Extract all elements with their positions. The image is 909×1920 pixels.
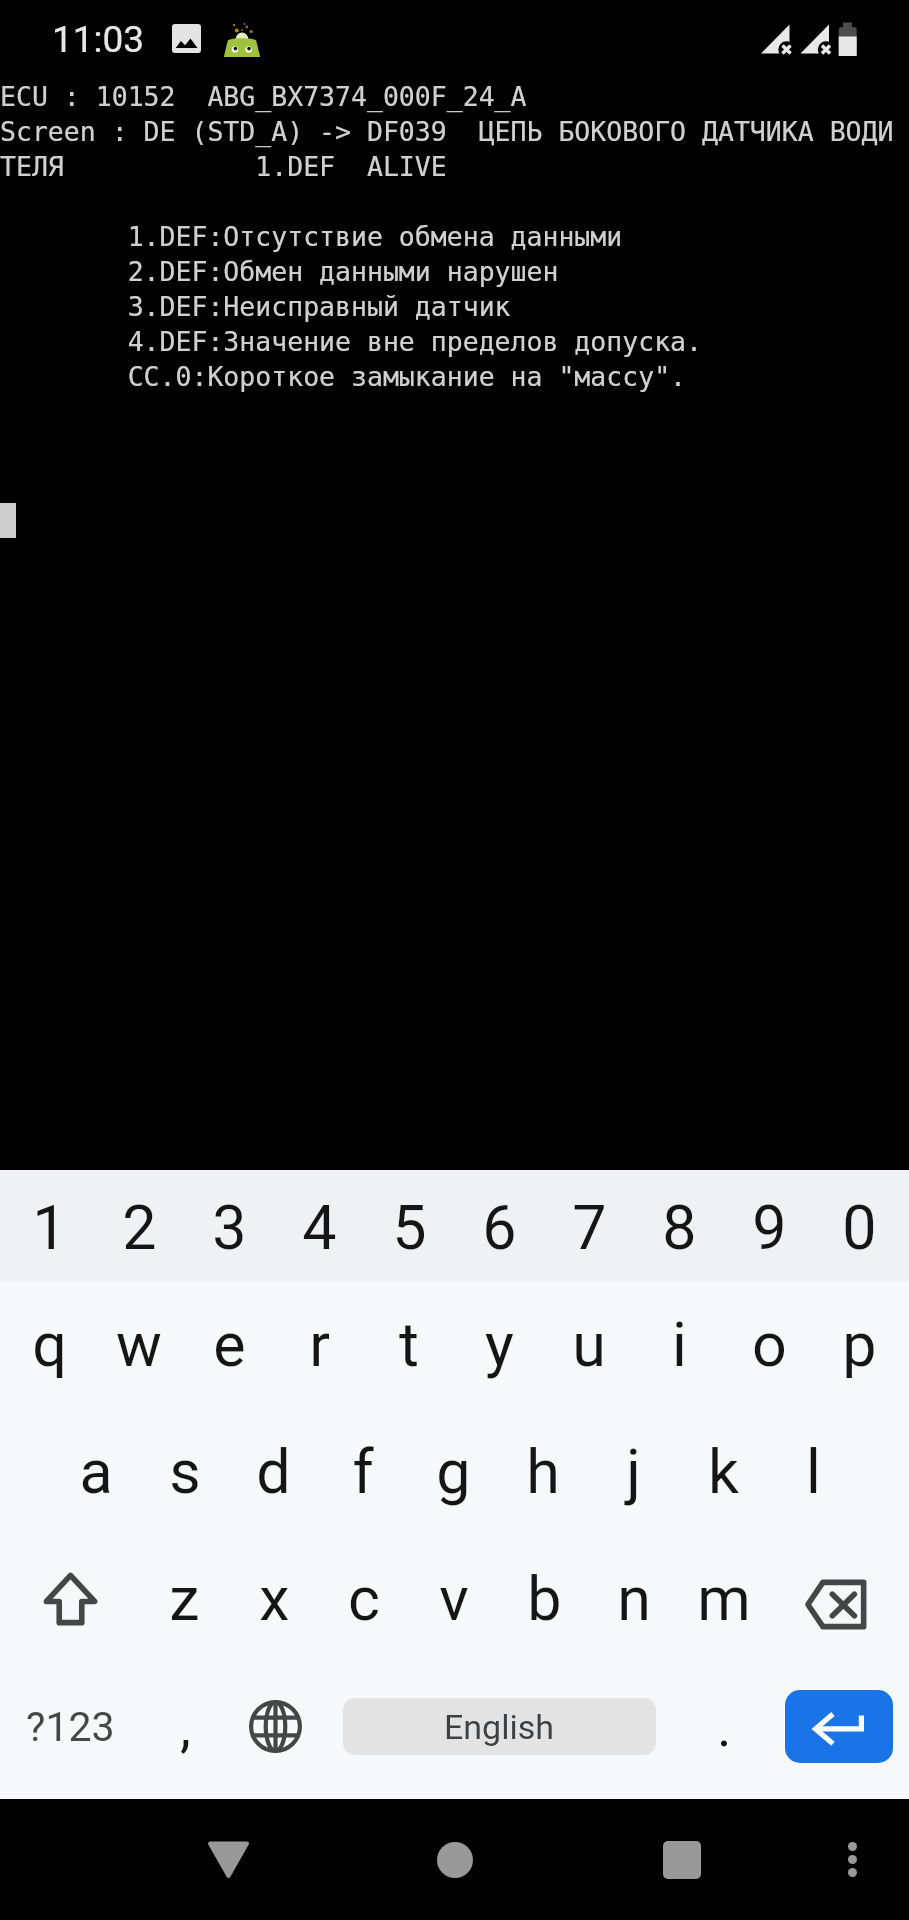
button[interactable]: u bbox=[544, 1281, 634, 1408]
staticText: s bbox=[169, 1436, 201, 1507]
staticText: y bbox=[485, 1309, 514, 1380]
button[interactable]: Change keyboard language bbox=[230, 1658, 320, 1795]
button[interactable]: n bbox=[589, 1535, 679, 1662]
button[interactable]: c bbox=[319, 1535, 409, 1662]
staticText: h bbox=[526, 1436, 560, 1507]
staticText: a bbox=[79, 1436, 113, 1507]
button[interactable]: 7 bbox=[544, 1172, 634, 1283]
staticText: q bbox=[32, 1309, 67, 1380]
staticText: t bbox=[399, 1309, 419, 1380]
button[interactable]: English bbox=[343, 1698, 656, 1755]
button[interactable]: 3 bbox=[184, 1172, 274, 1283]
button[interactable]: i bbox=[634, 1281, 724, 1408]
button[interactable]: k bbox=[678, 1408, 768, 1535]
staticText: e bbox=[213, 1309, 246, 1380]
staticText: 2 bbox=[122, 1192, 157, 1263]
staticText: l bbox=[806, 1436, 821, 1507]
button[interactable]: t bbox=[364, 1281, 454, 1408]
staticText: 9 bbox=[752, 1192, 787, 1263]
staticText: 0 bbox=[842, 1192, 877, 1263]
button[interactable]: y bbox=[454, 1281, 544, 1408]
staticText: p bbox=[842, 1309, 877, 1380]
staticText: d bbox=[256, 1436, 291, 1507]
button[interactable]: q bbox=[5, 1281, 94, 1408]
staticText: r bbox=[309, 1309, 330, 1380]
staticText: m bbox=[697, 1563, 751, 1634]
staticText: 6 bbox=[482, 1192, 517, 1263]
button[interactable]: g bbox=[408, 1408, 498, 1535]
staticText: 1 bbox=[32, 1192, 67, 1263]
button[interactable]: Back bbox=[168, 1799, 288, 1920]
staticText: 3 bbox=[212, 1192, 247, 1263]
button[interactable]: 1 bbox=[5, 1172, 94, 1283]
button[interactable]: Home bbox=[395, 1799, 515, 1920]
staticText: k bbox=[708, 1436, 739, 1507]
staticText: w bbox=[116, 1309, 162, 1380]
staticText: , bbox=[180, 1695, 191, 1759]
staticText: 4 bbox=[302, 1192, 337, 1263]
button[interactable]: v bbox=[409, 1535, 499, 1662]
staticText: ECU : 10152 ABG_BX7374_000F_24_A Screen … bbox=[0, 81, 909, 392]
button[interactable]: Shift bbox=[0, 1535, 140, 1662]
button[interactable]: 2 bbox=[94, 1172, 184, 1283]
button[interactable]: r bbox=[274, 1281, 364, 1408]
staticText: z bbox=[169, 1563, 200, 1634]
button[interactable]: 6 bbox=[454, 1172, 544, 1283]
button[interactable]: o bbox=[724, 1281, 814, 1408]
button[interactable]: h bbox=[498, 1408, 588, 1535]
button[interactable]: . bbox=[679, 1658, 769, 1795]
button[interactable]: ?123 bbox=[0, 1658, 140, 1795]
button[interactable]: More options bbox=[792, 1799, 909, 1920]
staticText: . bbox=[717, 1695, 732, 1759]
button[interactable]: e bbox=[184, 1281, 274, 1408]
button[interactable]: 0 bbox=[814, 1172, 904, 1283]
button[interactable]: s bbox=[140, 1408, 229, 1535]
button[interactable]: , bbox=[140, 1658, 230, 1795]
staticText: v bbox=[439, 1563, 469, 1634]
staticText: ?123 bbox=[26, 1703, 115, 1751]
button[interactable]: w bbox=[94, 1281, 184, 1408]
staticText: x bbox=[259, 1563, 290, 1634]
button[interactable]: 9 bbox=[724, 1172, 814, 1283]
staticText: n bbox=[617, 1563, 651, 1634]
staticText: 5 bbox=[392, 1192, 427, 1263]
staticText: f bbox=[352, 1436, 374, 1507]
staticText: English bbox=[444, 1707, 555, 1747]
staticText: o bbox=[752, 1309, 787, 1380]
button[interactable]: l bbox=[768, 1408, 858, 1535]
button[interactable]: Recent apps bbox=[622, 1799, 742, 1920]
button[interactable]: 5 bbox=[364, 1172, 454, 1283]
staticText: c bbox=[348, 1563, 380, 1634]
staticText: 11:03 bbox=[52, 18, 145, 61]
staticText: i bbox=[672, 1309, 687, 1380]
staticText: 8 bbox=[662, 1192, 697, 1263]
staticText: j bbox=[626, 1436, 641, 1507]
button[interactable]: ECU : 10152 ABG_BX7374_000F_24_A Screen … bbox=[0, 75, 909, 1170]
staticText: g bbox=[436, 1436, 471, 1507]
button[interactable]: z bbox=[140, 1535, 229, 1662]
button[interactable]: f bbox=[318, 1408, 408, 1535]
button[interactable]: p bbox=[814, 1281, 904, 1408]
staticText: b bbox=[527, 1563, 562, 1634]
button[interactable]: b bbox=[499, 1535, 589, 1662]
button[interactable]: d bbox=[229, 1408, 318, 1535]
button[interactable]: Backspace bbox=[769, 1535, 909, 1662]
button[interactable]: 4 bbox=[274, 1172, 364, 1283]
button[interactable]: a bbox=[51, 1408, 140, 1535]
button[interactable]: x bbox=[229, 1535, 319, 1662]
button[interactable]: Enter bbox=[785, 1690, 893, 1763]
button[interactable]: m bbox=[679, 1535, 769, 1662]
staticText: u bbox=[572, 1309, 606, 1380]
staticText: 7 bbox=[572, 1192, 607, 1263]
button[interactable]: j bbox=[588, 1408, 678, 1535]
button[interactable]: 8 bbox=[634, 1172, 724, 1283]
